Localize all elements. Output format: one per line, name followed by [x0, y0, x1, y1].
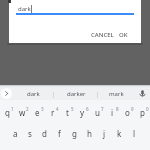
- button[interactable]: r: [45, 100, 60, 121]
- button[interactable]: u: [90, 100, 105, 121]
- staticText: OK: [119, 31, 128, 39]
- button[interactable]: dark: [13, 87, 54, 100]
- staticText: q: [5, 107, 10, 118]
- staticText: 5: [71, 106, 74, 112]
- staticText: 9: [131, 106, 134, 112]
- staticText: f: [58, 128, 61, 139]
- staticText: y: [80, 107, 85, 118]
- button[interactable]: o: [120, 100, 135, 121]
- staticText: darker: [67, 90, 86, 98]
- staticText: dark: [27, 90, 40, 98]
- staticText: l: [133, 128, 136, 139]
- staticText: 1: [11, 106, 14, 112]
- button[interactable]: d: [37, 121, 52, 142]
- button[interactable]: darker: [54, 87, 98, 100]
- staticText: i: [111, 107, 114, 118]
- staticText: 4: [56, 106, 59, 112]
- staticText: u: [95, 107, 100, 118]
- staticText: mark: [109, 90, 124, 98]
- button[interactable]: j: [97, 121, 112, 142]
- button[interactable]: More suggestions: [1, 88, 12, 99]
- staticText: 7: [101, 106, 104, 112]
- staticText: p: [140, 107, 145, 118]
- staticText: s: [28, 128, 32, 139]
- staticText: e: [35, 107, 40, 118]
- staticText: a: [13, 128, 18, 139]
- button[interactable]: a: [8, 121, 22, 142]
- button[interactable]: Voice input: [134, 87, 150, 100]
- staticText: dark: [18, 5, 31, 13]
- staticText: h: [87, 128, 92, 139]
- staticText: 6: [86, 106, 89, 112]
- button[interactable]: mark: [98, 87, 135, 100]
- staticText: g: [72, 128, 77, 139]
- staticText: r: [51, 107, 55, 118]
- staticText: o: [125, 107, 130, 118]
- button[interactable]: k: [112, 121, 127, 142]
- staticText: 3: [41, 106, 44, 112]
- button[interactable]: OK: [117, 29, 130, 41]
- button[interactable]: p: [135, 100, 150, 121]
- button[interactable]: e: [30, 100, 45, 121]
- button[interactable]: y: [75, 100, 90, 121]
- staticText: 0: [146, 106, 149, 112]
- staticText: 2: [26, 106, 29, 112]
- button[interactable]: h: [82, 121, 97, 142]
- staticText: t: [66, 107, 69, 118]
- button[interactable]: g: [67, 121, 82, 142]
- button[interactable]: f: [52, 121, 67, 142]
- staticText: j: [103, 128, 106, 139]
- staticText: CANCEL: [91, 31, 114, 39]
- button[interactable]: w: [15, 100, 30, 121]
- staticText: w: [19, 107, 26, 118]
- button[interactable]: s: [22, 121, 37, 142]
- button[interactable]: CANCEL: [89, 29, 116, 41]
- button[interactable]: t: [60, 100, 75, 121]
- staticText: 8: [116, 106, 119, 112]
- button[interactable]: l: [127, 121, 142, 142]
- staticText: d: [42, 128, 47, 139]
- button[interactable]: q: [0, 100, 15, 121]
- staticText: k: [117, 128, 122, 139]
- button[interactable]: i: [105, 100, 120, 121]
